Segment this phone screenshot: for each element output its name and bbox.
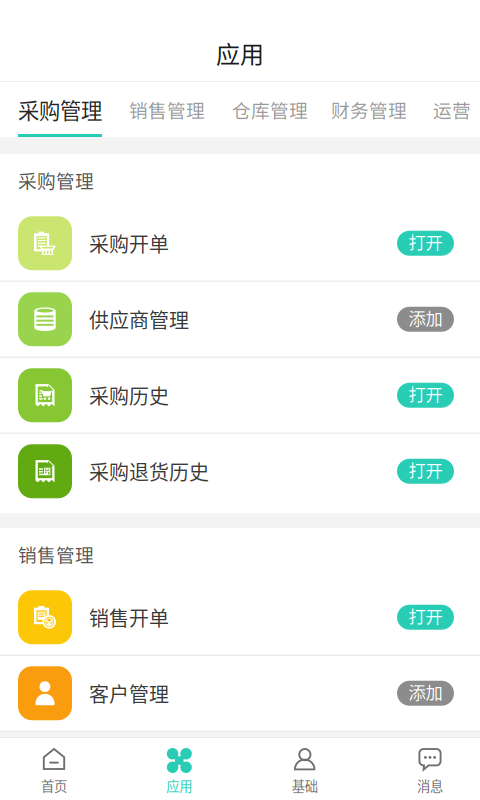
button[interactable]: 采购退货历史	[0, 434, 480, 510]
staticText: 采购管理	[18, 166, 94, 193]
staticText: 销售管理	[18, 540, 94, 567]
button[interactable]: 销售开单	[0, 580, 480, 656]
staticText: 仓库管理	[232, 96, 308, 123]
button[interactable]: 仓库管理	[232, 82, 308, 137]
staticText: 运营	[433, 96, 471, 123]
button[interactable]: 采购管理	[18, 82, 102, 137]
staticText: 首页	[41, 776, 67, 795]
staticText: 打开	[408, 229, 442, 254]
button[interactable]: 财务管理	[331, 82, 407, 137]
staticText: 应用	[166, 776, 192, 795]
staticText: 销售开单	[89, 603, 169, 632]
button[interactable]: 供应商管理	[0, 282, 480, 358]
staticText: 销售管理	[129, 96, 205, 123]
button[interactable]: 消息	[399, 738, 461, 800]
button[interactable]: 客户管理	[0, 656, 480, 732]
staticText: 财务管理	[331, 96, 407, 123]
staticText: 应用	[216, 36, 264, 70]
staticText: 消息	[417, 776, 443, 795]
staticText: 采购管理	[18, 94, 102, 125]
button[interactable]: 基础	[274, 738, 336, 800]
staticText: 基础	[292, 776, 318, 795]
button[interactable]: 采购开单	[0, 206, 480, 282]
staticText: 供应商管理	[89, 305, 189, 334]
button[interactable]: 应用	[148, 738, 210, 800]
staticText: 打开	[408, 603, 442, 628]
staticText: 添加	[408, 679, 442, 704]
button[interactable]: 运营	[433, 82, 471, 137]
staticText: 打开	[408, 381, 442, 406]
staticText: 打开	[408, 457, 442, 482]
staticText: 采购历史	[89, 381, 169, 410]
button[interactable]: 首页	[23, 738, 85, 800]
button[interactable]: 销售管理	[129, 82, 205, 137]
staticText: 添加	[408, 305, 442, 330]
staticText: 采购退货历史	[89, 457, 209, 486]
staticText: 客户管理	[89, 679, 169, 708]
button[interactable]: 采购历史	[0, 358, 480, 434]
staticText: 采购开单	[89, 229, 169, 258]
